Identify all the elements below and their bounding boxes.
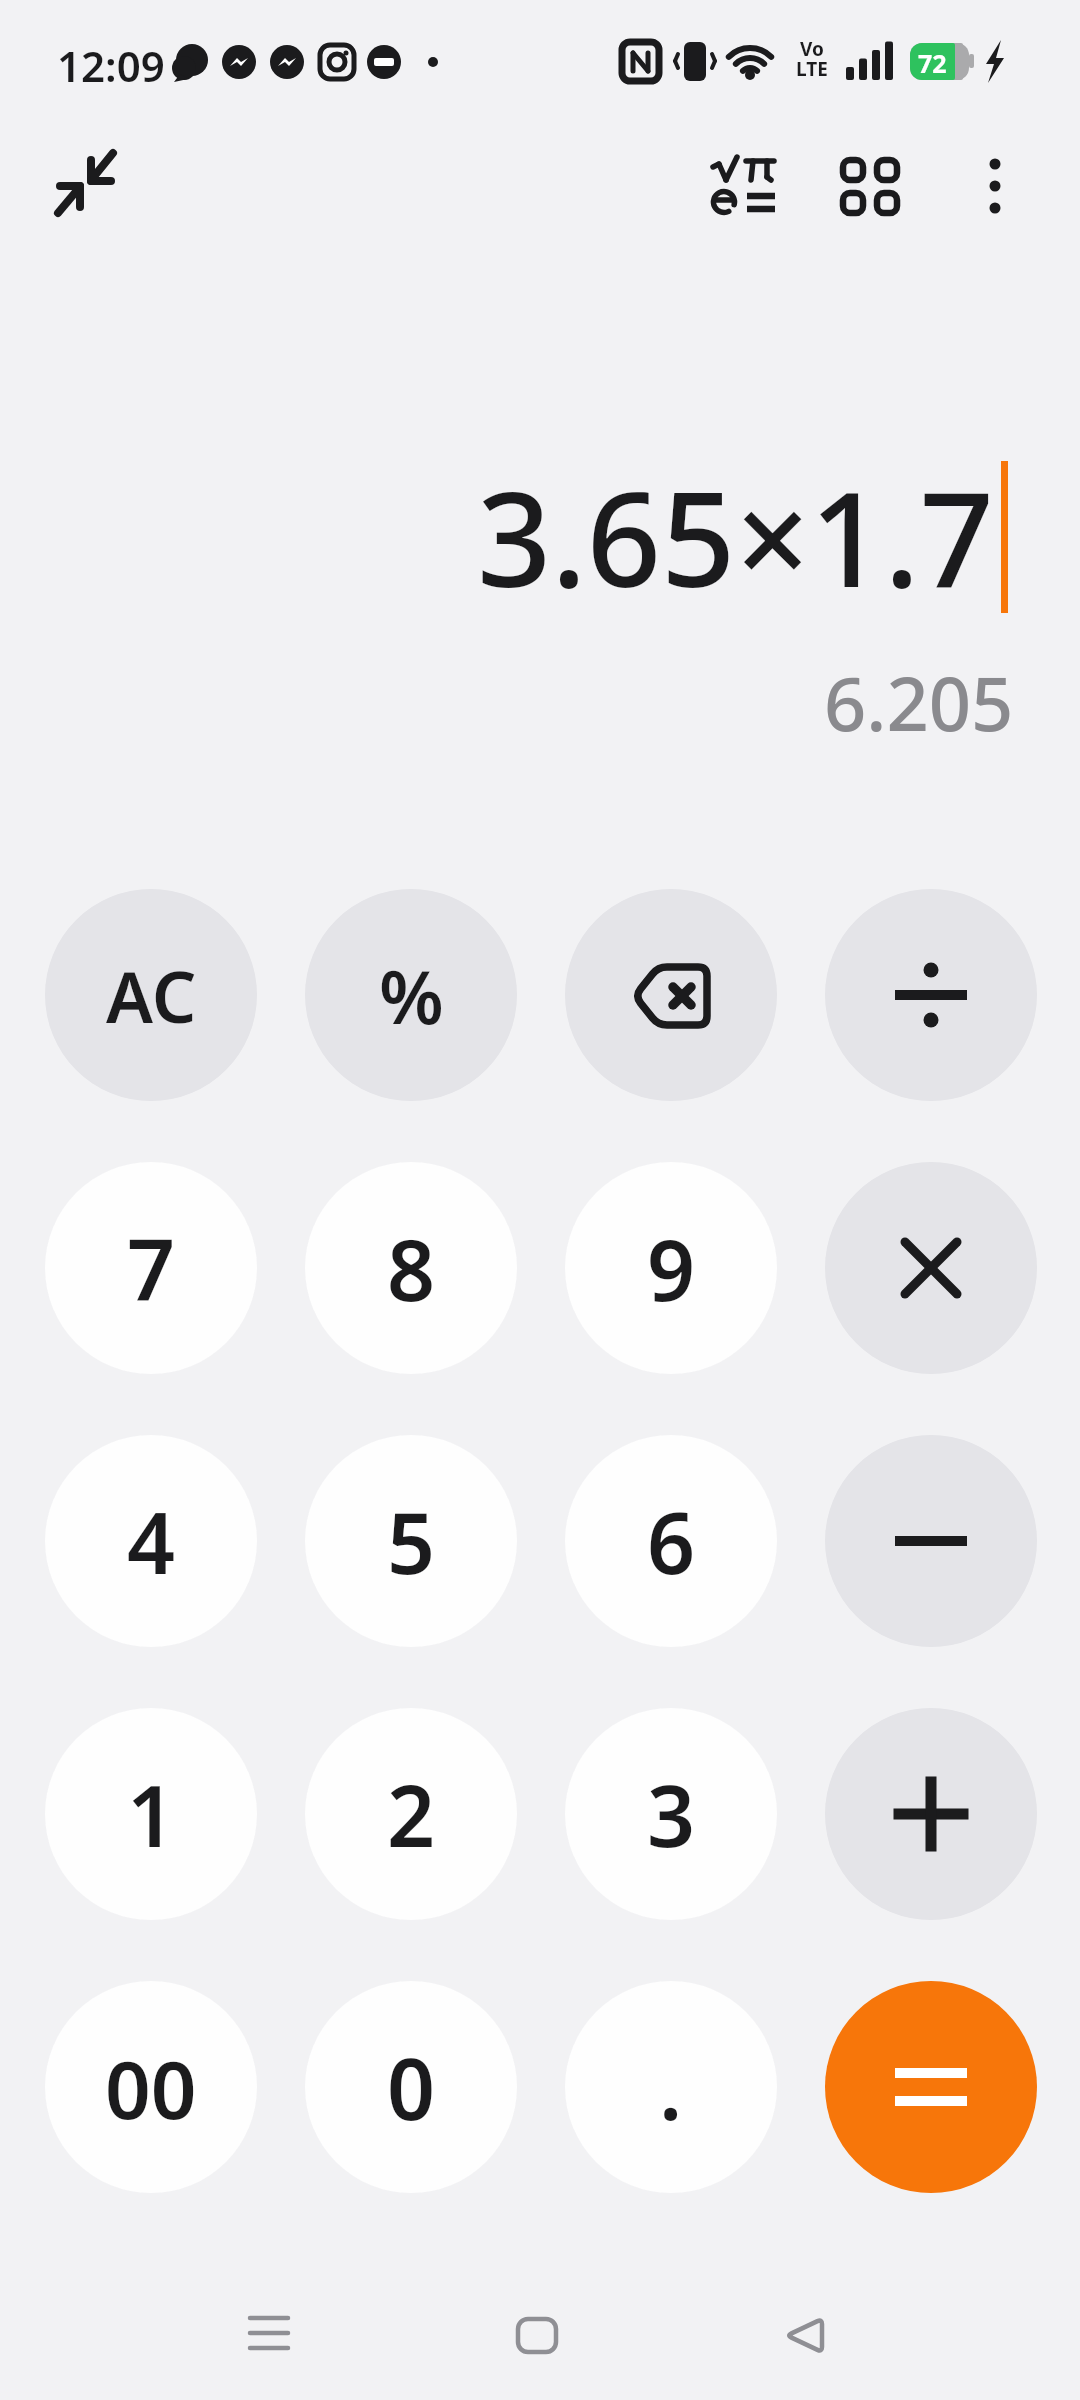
- button[interactable]: [487, 2283, 587, 2383]
- staticText: 4: [127, 1484, 176, 1598]
- staticText: 1: [127, 1757, 176, 1871]
- staticText: 12:09: [57, 37, 165, 94]
- button[interactable]: [825, 1162, 1037, 1374]
- staticText: 3.65×1.7: [477, 448, 994, 625]
- staticText: 6: [647, 1484, 696, 1598]
- staticText: 9: [647, 1211, 696, 1325]
- button[interactable]: [834, 152, 906, 220]
- button[interactable]: .: [565, 1981, 777, 2193]
- staticText: 2: [387, 1757, 436, 1871]
- staticText: 3: [647, 1757, 696, 1871]
- staticText: Vo: [800, 36, 824, 62]
- button[interactable]: 1: [45, 1708, 257, 1920]
- button[interactable]: %: [305, 889, 517, 1101]
- staticText: 6.205: [824, 652, 1014, 753]
- button[interactable]: 9: [565, 1162, 777, 1374]
- button[interactable]: 5: [305, 1435, 517, 1647]
- staticText: AC: [106, 948, 197, 1043]
- button[interactable]: 0: [305, 1981, 517, 2193]
- staticText: LTE: [796, 56, 828, 82]
- button[interactable]: [825, 1435, 1037, 1647]
- button[interactable]: [36, 132, 136, 232]
- staticText: 8: [387, 1211, 436, 1325]
- staticText: %: [379, 945, 444, 1046]
- staticText: .: [659, 2030, 683, 2144]
- button[interactable]: [825, 889, 1037, 1101]
- button[interactable]: 6: [565, 1435, 777, 1647]
- button[interactable]: [755, 2283, 855, 2383]
- button[interactable]: 7: [45, 1162, 257, 1374]
- button[interactable]: [219, 2283, 319, 2383]
- button[interactable]: [565, 889, 777, 1101]
- button[interactable]: AC: [45, 889, 257, 1101]
- button[interactable]: [965, 150, 1025, 222]
- staticText: 0: [387, 2030, 436, 2144]
- button[interactable]: 00: [45, 1981, 257, 2193]
- button[interactable]: 8: [305, 1162, 517, 1374]
- staticText: 00: [105, 2033, 197, 2142]
- button[interactable]: [825, 1981, 1037, 2193]
- staticText: 7: [127, 1211, 176, 1325]
- staticText: 5: [387, 1484, 436, 1598]
- staticText: 72: [918, 46, 947, 80]
- button[interactable]: 3: [565, 1708, 777, 1920]
- button[interactable]: 4: [45, 1435, 257, 1647]
- button[interactable]: 2: [305, 1708, 517, 1920]
- button[interactable]: [825, 1708, 1037, 1920]
- button[interactable]: [706, 150, 782, 220]
